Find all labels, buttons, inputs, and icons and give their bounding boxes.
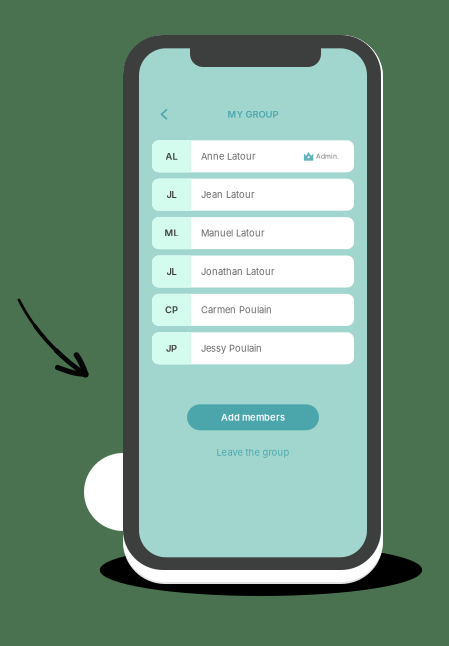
staticText: Jean Latour bbox=[201, 189, 255, 200]
staticText: Add members bbox=[221, 412, 285, 423]
button[interactable]: JL bbox=[152, 255, 354, 287]
staticText: CP bbox=[165, 304, 178, 316]
staticText: JP bbox=[166, 343, 177, 354]
button[interactable]: AL bbox=[152, 140, 354, 172]
staticText: Carmen Poulain bbox=[201, 304, 272, 316]
staticText: JL bbox=[166, 189, 176, 200]
button[interactable]: JP bbox=[152, 332, 354, 364]
staticText: AL bbox=[165, 151, 177, 162]
button[interactable]: Add members bbox=[187, 404, 319, 430]
staticText: ML bbox=[164, 227, 178, 239]
staticText: Manuel Latour bbox=[201, 227, 265, 239]
staticText: Anne Latour bbox=[201, 151, 256, 162]
staticText: Leave the group bbox=[216, 447, 289, 458]
button[interactable]: CP bbox=[152, 294, 354, 326]
button[interactable]: ML bbox=[152, 217, 354, 249]
staticText: JL bbox=[166, 266, 176, 277]
button[interactable]: Leave the group bbox=[152, 442, 354, 462]
staticText: Jessy Poulain bbox=[201, 343, 262, 354]
staticText: MY GROUP bbox=[227, 109, 278, 120]
staticText: Jonathan Latour bbox=[201, 266, 275, 277]
button[interactable]: Back bbox=[152, 102, 176, 126]
staticText: Admin. bbox=[316, 152, 339, 160]
button[interactable]: JL bbox=[152, 179, 354, 211]
